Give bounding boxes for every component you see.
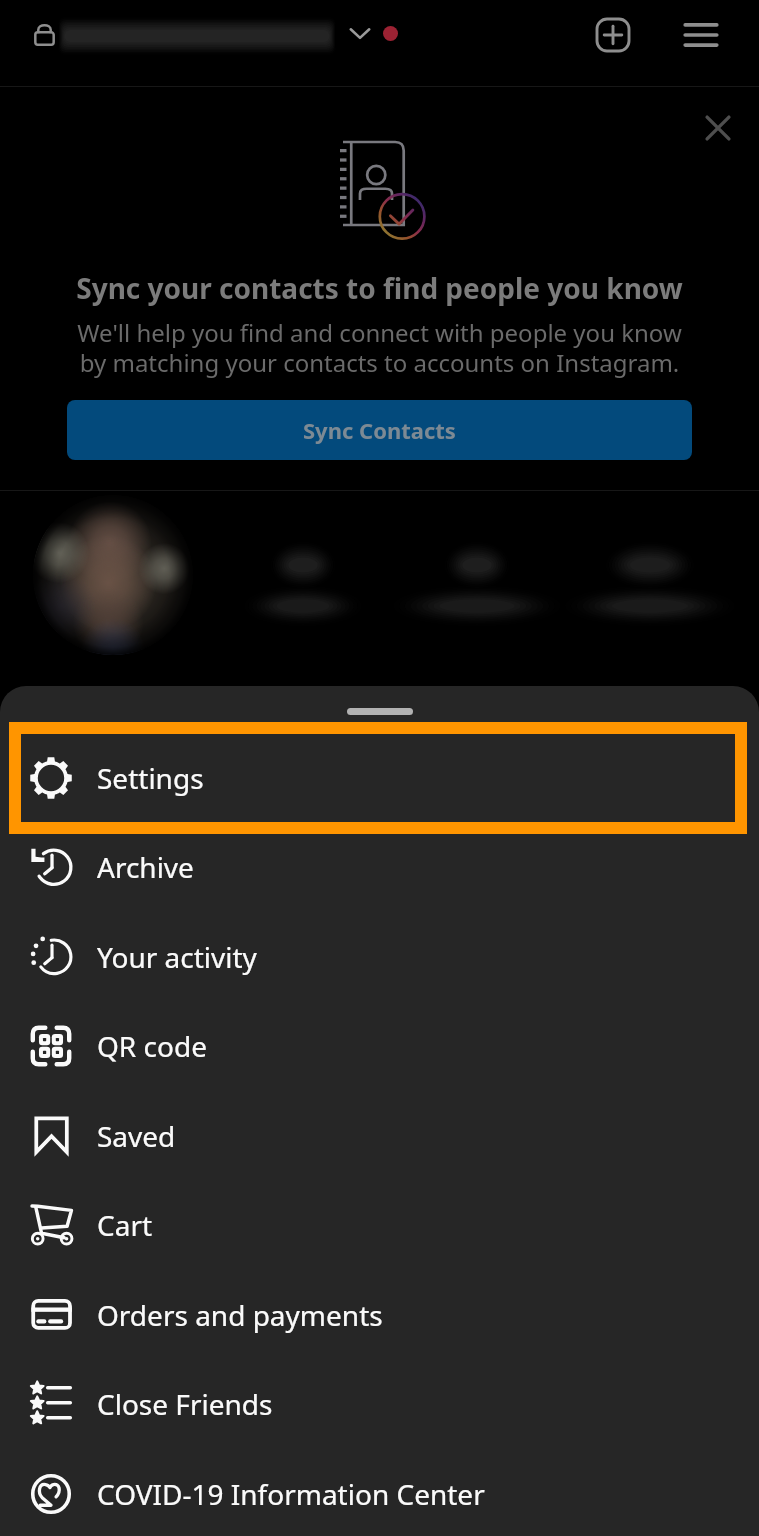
button[interactable]: New post — [587, 9, 639, 61]
button[interactable]: Cart — [0, 1180, 759, 1269]
button[interactable]: Close — [696, 106, 740, 150]
staticText: Saved — [97, 1117, 176, 1155]
button[interactable]: Close Friends — [0, 1359, 759, 1448]
staticText: Settings — [97, 759, 204, 797]
staticText: Close Friends — [97, 1385, 273, 1423]
button[interactable] — [392, 535, 562, 630]
button[interactable]: Switch accounts — [343, 16, 377, 50]
button[interactable] — [565, 535, 735, 630]
staticText: COVID-19 Information Center — [97, 1475, 485, 1513]
button[interactable]: Orders and payments — [0, 1270, 759, 1359]
button[interactable]: Your activity — [0, 912, 759, 1001]
staticText: We'll help you find and connect with peo… — [0, 316, 759, 379]
staticText: Sync Contacts — [303, 415, 456, 445]
button[interactable]: COVID-19 Information Center — [0, 1449, 759, 1536]
staticText: Your activity — [97, 938, 257, 976]
button[interactable]: Settings — [0, 733, 759, 822]
staticText: Sync your contacts to find people you kn… — [0, 269, 759, 307]
button[interactable] — [218, 535, 388, 630]
staticText: QR code — [97, 1027, 207, 1065]
button[interactable] — [33, 495, 193, 655]
button[interactable]: Saved — [0, 1091, 759, 1180]
staticText: Archive — [97, 848, 194, 886]
button[interactable]: Menu — [675, 9, 727, 61]
button[interactable]: Sync Contacts — [67, 400, 692, 460]
staticText: Cart — [97, 1206, 153, 1244]
staticText: Orders and payments — [97, 1296, 383, 1334]
button[interactable]: QR code — [0, 1001, 759, 1090]
button[interactable]: Private account — [23, 13, 65, 55]
button[interactable]: Archive — [0, 822, 759, 911]
